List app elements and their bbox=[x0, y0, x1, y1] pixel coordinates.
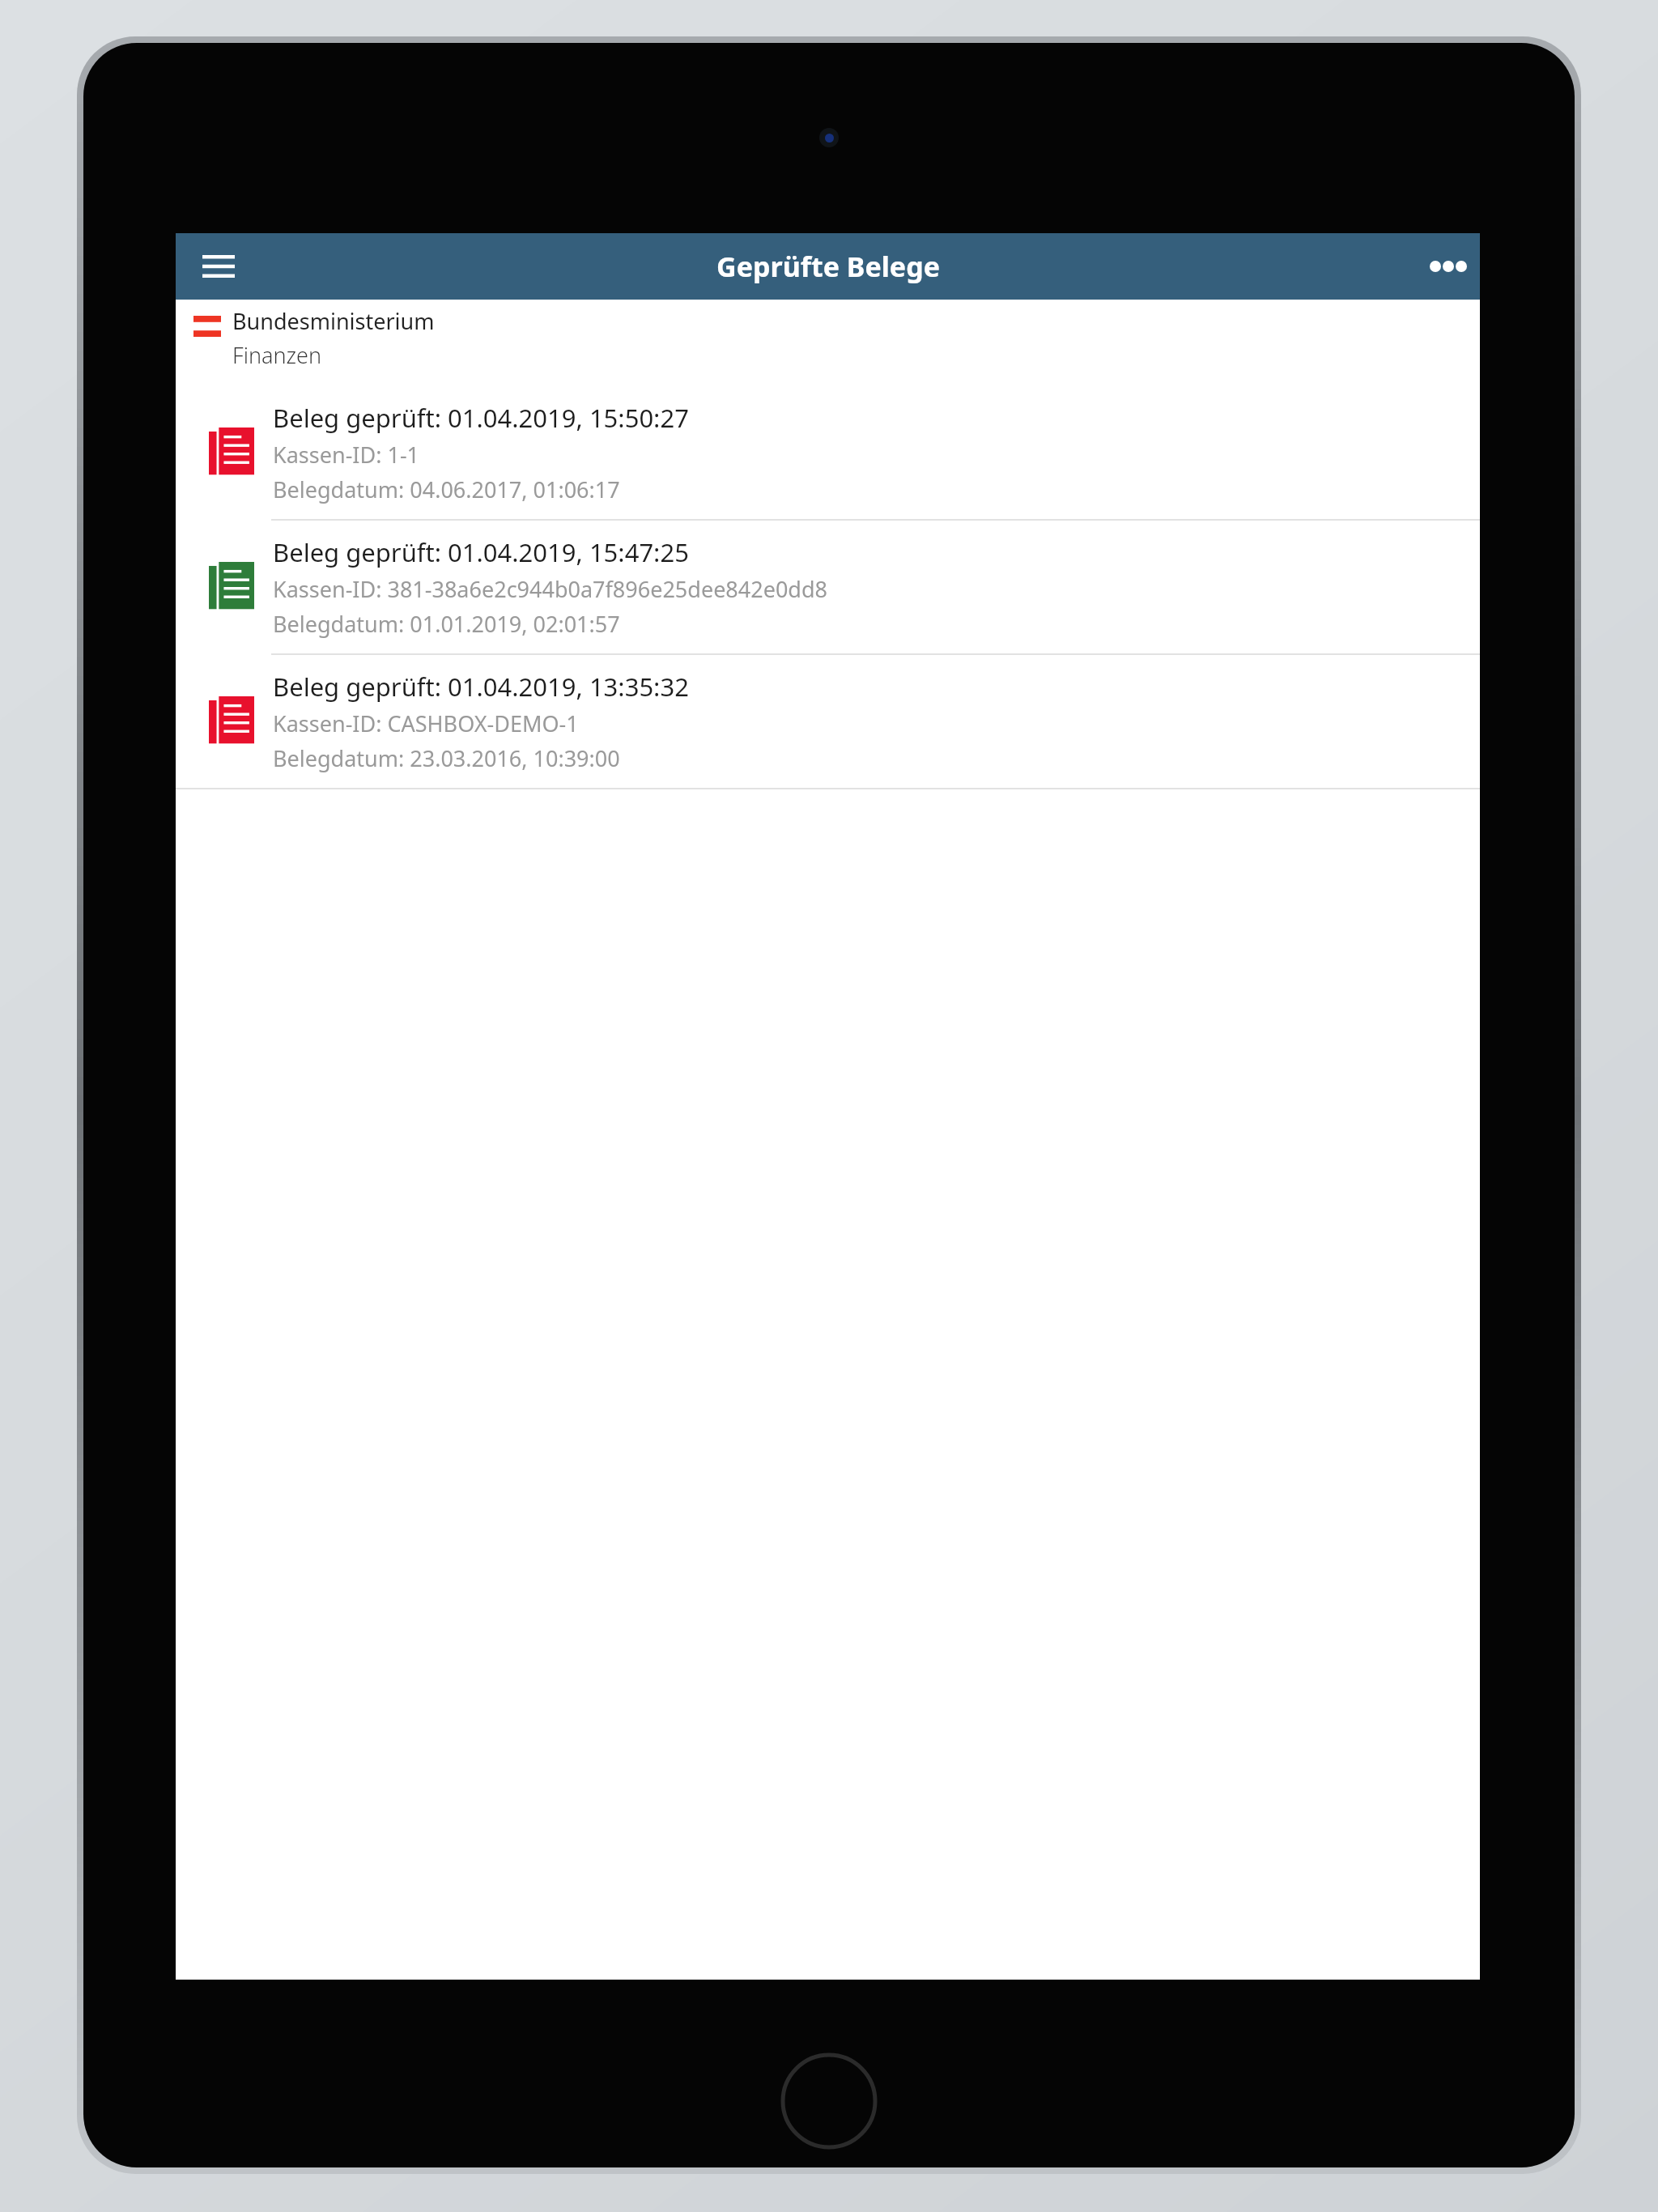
button[interactable]: Weitere Optionen bbox=[1420, 238, 1477, 295]
staticText: Finanzen bbox=[232, 340, 321, 370]
staticText: Beleg geprüft: 01.04.2019, 13:35:32 bbox=[273, 670, 689, 704]
staticText: Beleg geprüft: 01.04.2019, 15:47:25 bbox=[273, 535, 689, 569]
staticText: Kassen-ID: 1-1 bbox=[273, 440, 420, 470]
staticText: Belegdatum: 23.03.2016, 10:39:00 bbox=[273, 743, 620, 773]
staticText: Kassen-ID: CASHBOX-DEMO-1 bbox=[273, 708, 579, 738]
button[interactable]: Beleg geprüft: 01.04.2019, 13:35:32 bbox=[176, 655, 1480, 788]
staticText: Geprüfte Belege bbox=[716, 248, 940, 285]
button[interactable]: Beleg geprüft: 01.04.2019, 15:47:25 bbox=[176, 521, 1480, 653]
staticText: Belegdatum: 01.01.2019, 02:01:57 bbox=[273, 609, 620, 639]
staticText: Bundesministerium bbox=[232, 306, 435, 336]
staticText: Beleg geprüft: 01.04.2019, 15:50:27 bbox=[273, 401, 689, 435]
staticText: Belegdatum: 04.06.2017, 01:06:17 bbox=[273, 474, 620, 504]
button[interactable]: Menü bbox=[193, 241, 244, 291]
button[interactable]: Beleg geprüft: 01.04.2019, 15:50:27 bbox=[176, 386, 1480, 519]
staticText: Kassen-ID: 381-38a6e2c944b0a7f896e25dee8… bbox=[273, 574, 828, 604]
